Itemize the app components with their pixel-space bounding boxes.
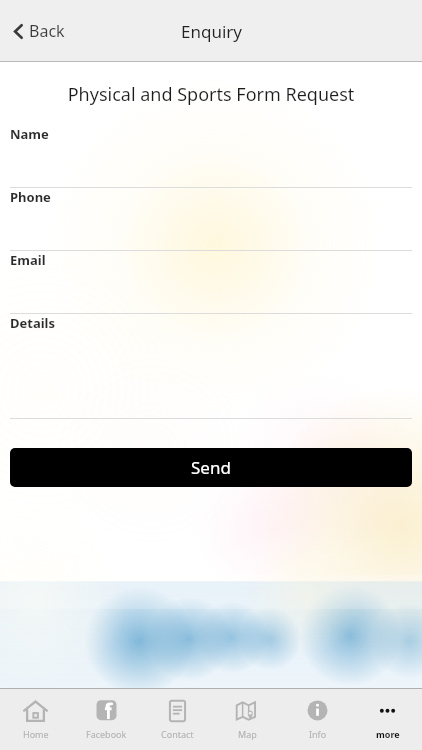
button[interactable]: Back [10,14,69,48]
staticText: Info [309,728,327,740]
staticText: Map [238,728,257,740]
button[interactable]: Info [282,688,352,750]
staticText: Email [10,251,46,269]
button[interactable]: more [352,688,422,750]
staticText: Enquiry [181,20,242,43]
staticText: Send [191,456,231,479]
staticText: Back [29,20,65,42]
staticText: Details [10,314,55,332]
staticText: Home [23,728,49,740]
staticText: Facebook [86,728,127,740]
staticText: Physical and Sports Form Request [0,82,422,107]
button[interactable]: Map [212,688,282,750]
button[interactable]: Home [0,688,71,750]
staticText: more [376,728,400,740]
button[interactable]: Facebook [71,688,142,750]
button[interactable]: Send [10,448,412,487]
staticText: Phone [10,188,51,206]
staticText: Contact [161,728,194,740]
staticText: Name [10,125,49,143]
button[interactable]: Contact [142,688,212,750]
